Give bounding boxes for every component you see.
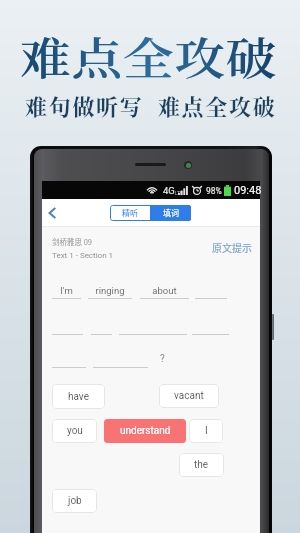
staticText: understand <box>120 425 171 437</box>
staticText: job <box>68 495 82 507</box>
staticText: 难句做听写 难点全攻破 <box>25 90 277 122</box>
staticText: 98% <box>206 186 222 196</box>
button[interactable]: you <box>52 419 97 443</box>
staticText: the <box>194 459 209 471</box>
staticText: vacant <box>174 390 204 402</box>
button[interactable]: understand <box>104 419 186 443</box>
button[interactable]: have <box>52 384 105 409</box>
staticText: I'm <box>60 285 73 296</box>
staticText: have <box>68 391 89 403</box>
staticText: 4G <box>163 185 175 196</box>
staticText: 原文提示 <box>212 240 252 254</box>
button[interactable]: 填词 <box>150 205 191 221</box>
button[interactable]: the <box>179 453 224 477</box>
staticText: 填词 <box>163 207 179 219</box>
staticText: I <box>205 425 208 437</box>
staticText: about <box>152 285 177 296</box>
button[interactable]: vacant <box>159 384 219 408</box>
staticText: LTE <box>175 190 183 196</box>
staticText: Text 1 - Section 1 <box>52 251 114 260</box>
button[interactable]: 原文提示 <box>212 240 252 254</box>
staticText: ? <box>160 353 165 365</box>
staticText: 剑桥雅思 09 <box>52 236 93 247</box>
button[interactable]: Back <box>43 204 61 222</box>
button[interactable]: I <box>189 419 223 443</box>
staticText: 09:48 <box>234 184 262 197</box>
staticText: 难点全攻破 <box>20 24 278 87</box>
staticText: you <box>67 425 83 437</box>
button[interactable]: 精听 <box>110 205 150 221</box>
staticText: 精听 <box>122 207 138 219</box>
staticText: ringing <box>95 285 125 296</box>
button[interactable]: job <box>52 489 97 513</box>
